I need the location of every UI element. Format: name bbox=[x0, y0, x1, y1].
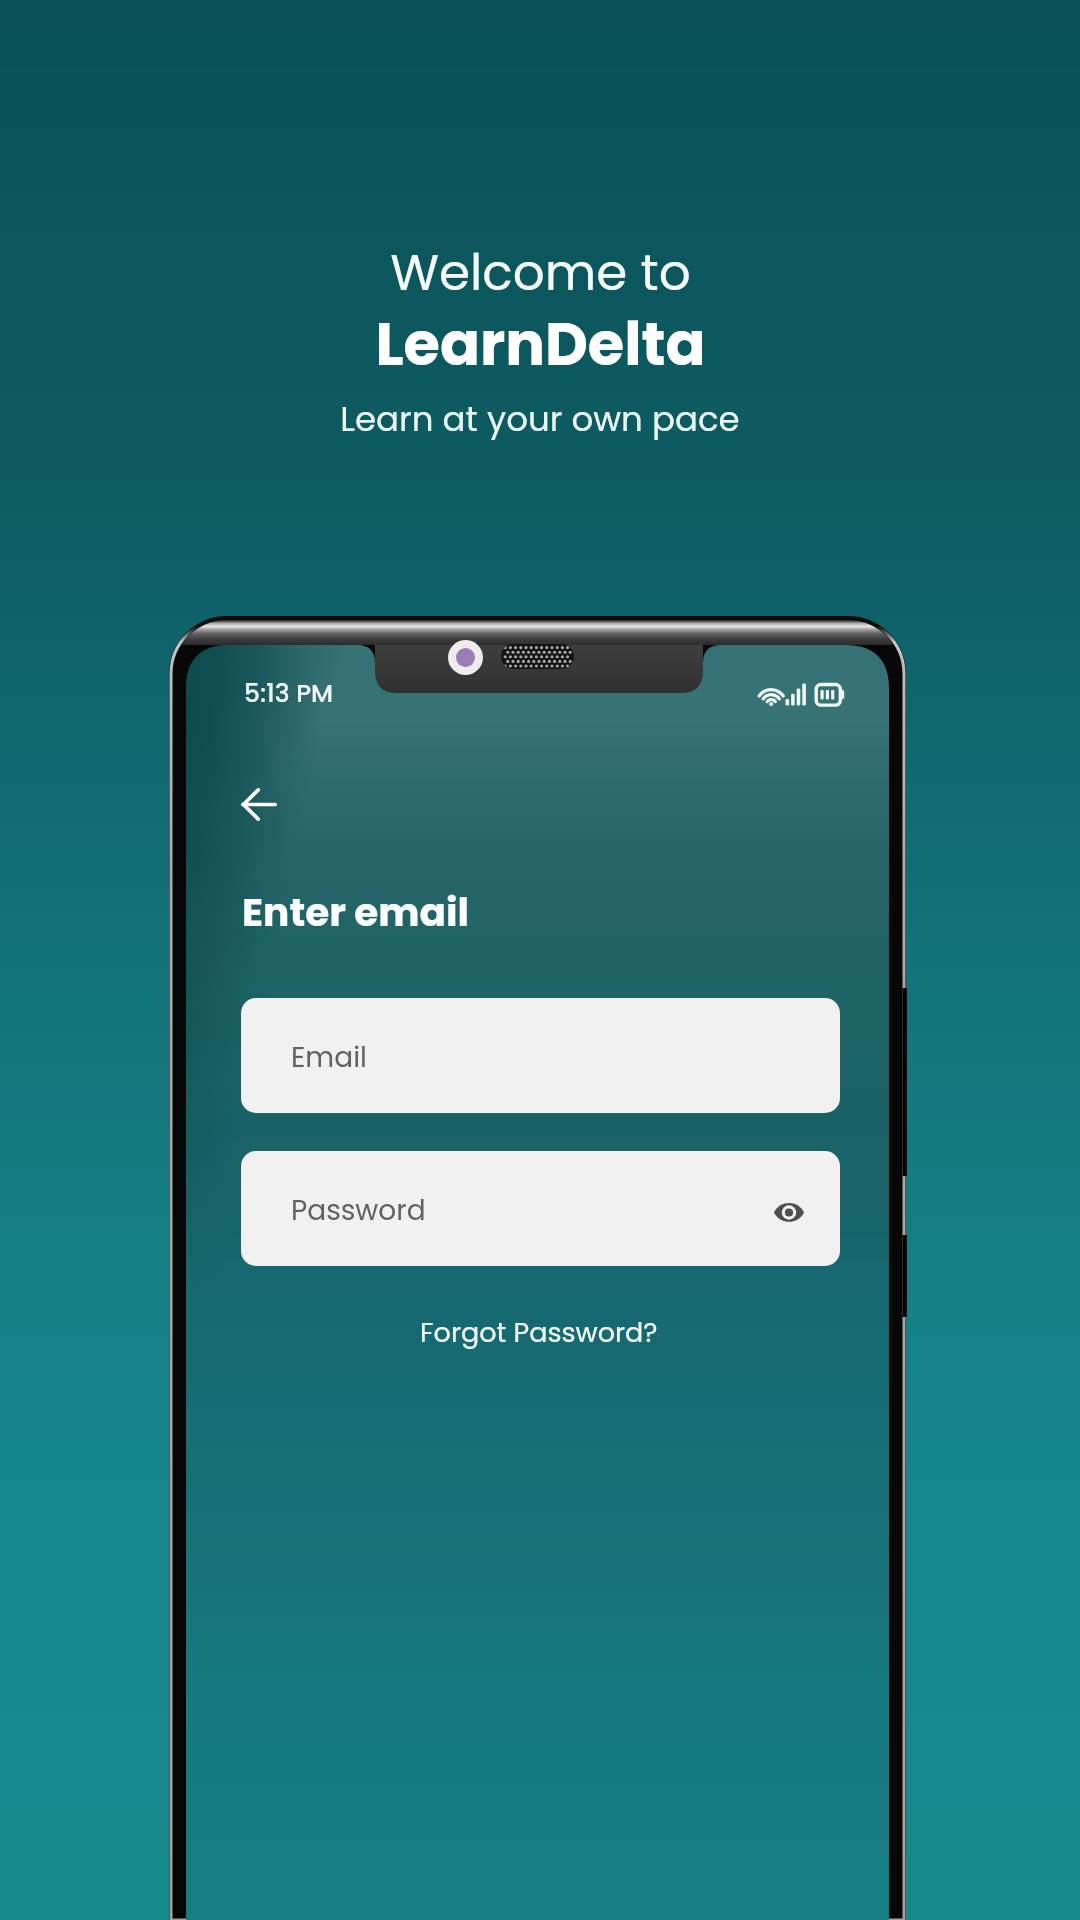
staticText: Learn at your own pace bbox=[340, 395, 740, 443]
staticText: Email bbox=[291, 1038, 367, 1077]
staticText: Enter email bbox=[242, 885, 470, 940]
button[interactable]: Back bbox=[224, 769, 294, 839]
staticText: Forgot Password? bbox=[420, 1314, 658, 1352]
button[interactable]: Email bbox=[241, 998, 840, 1113]
button[interactable]: Show password bbox=[765, 1188, 813, 1236]
staticText: LearnDelta bbox=[375, 303, 706, 386]
button[interactable]: Password bbox=[241, 1151, 840, 1266]
staticText: 5:13 PM bbox=[244, 676, 334, 711]
button[interactable]: Forgot Password? bbox=[420, 1314, 658, 1352]
staticText: Welcome to bbox=[390, 238, 691, 308]
staticText: Password bbox=[291, 1191, 426, 1230]
